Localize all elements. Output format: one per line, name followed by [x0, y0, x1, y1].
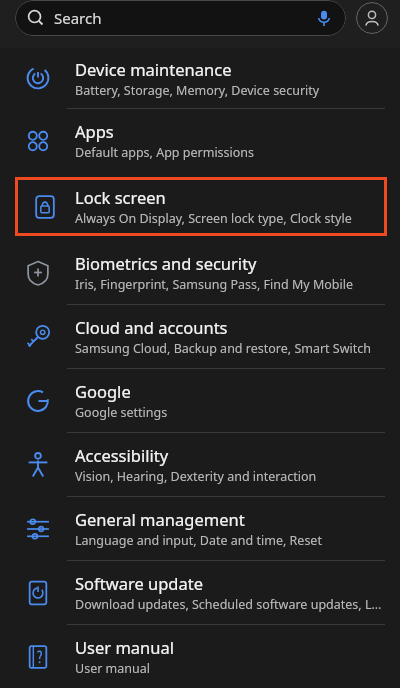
button[interactable]: Software update: [0, 561, 400, 624]
button[interactable]: Search: [15, 0, 346, 36]
button[interactable]: Lock screen: [15, 177, 387, 236]
staticText: Vision, Hearing, Dexterity and interacti…: [75, 468, 317, 485]
button[interactable]: Google: [0, 369, 400, 432]
staticText: Software update: [75, 572, 203, 594]
button[interactable]: Biometrics and security: [0, 241, 400, 304]
button[interactable]: Voice search: [314, 8, 334, 28]
staticText: Download updates, Scheduled software upd…: [75, 596, 384, 613]
button[interactable]: Account: [356, 2, 388, 34]
staticText: Iris, Fingerprint, Samsung Pass, Find My…: [75, 276, 353, 293]
staticText: General management: [75, 508, 245, 530]
button[interactable]: Accessibility: [0, 433, 400, 496]
staticText: User manual: [75, 660, 150, 677]
staticText: Always On Display, Screen lock type, Clo…: [75, 210, 352, 227]
staticText: Lock screen: [75, 186, 166, 208]
staticText: User manual: [75, 636, 174, 658]
staticText: Search: [54, 8, 102, 28]
staticText: Accessibility: [75, 444, 169, 466]
staticText: Biometrics and security: [75, 252, 257, 274]
staticText: Apps: [75, 120, 114, 142]
staticText: Default apps, App permissions: [75, 144, 255, 161]
button[interactable]: Cloud and accounts: [0, 305, 400, 368]
button[interactable]: General management: [0, 497, 400, 560]
staticText: Google: [75, 380, 131, 402]
staticText: Google settings: [75, 404, 168, 421]
button[interactable]: Device maintenance: [0, 48, 400, 108]
staticText: Cloud and accounts: [75, 316, 228, 338]
button[interactable]: User manual: [0, 625, 400, 688]
staticText: Samsung Cloud, Backup and restore, Smart…: [75, 340, 372, 357]
button[interactable]: Apps: [0, 109, 400, 172]
staticText: Language and input, Date and time, Reset: [75, 532, 322, 549]
staticText: Device maintenance: [75, 58, 232, 80]
staticText: Battery, Storage, Memory, Device securit…: [75, 82, 320, 99]
